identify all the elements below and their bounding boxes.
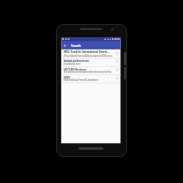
staticText: North Intellectual Property Organization [63, 78, 113, 81]
staticText: for political econom [63, 62, 113, 65]
button[interactable]: More info [115, 51, 119, 55]
staticText: JACCI AB Meetings [63, 67, 110, 70]
button[interactable] [61, 42, 121, 50]
staticText: A Foundational financial facility for ad… [63, 54, 113, 57]
staticText: Favourite [71, 44, 81, 48]
staticText: Radical political econ [63, 59, 110, 62]
button[interactable]: More info [115, 60, 119, 64]
button[interactable] [61, 58, 120, 66]
button[interactable]: More info [115, 68, 119, 72]
button[interactable] [61, 67, 120, 75]
staticText: The order governmental meetings from anc… [63, 70, 113, 73]
button[interactable] [61, 75, 120, 83]
staticText: NIPO [63, 76, 110, 79]
button[interactable]: Back [62, 42, 69, 49]
staticText: SPIEC Fund for International Development [63, 50, 110, 53]
button[interactable]: More info [115, 76, 119, 80]
button[interactable] [61, 49, 120, 58]
